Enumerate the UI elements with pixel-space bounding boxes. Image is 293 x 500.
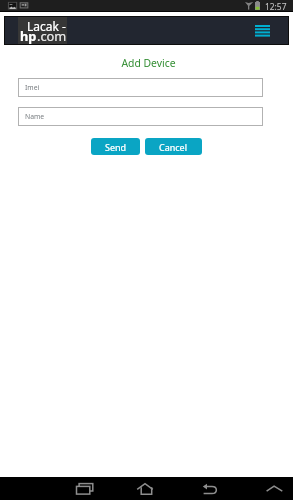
button[interactable]: Imei xyxy=(18,78,263,97)
staticText: hp xyxy=(20,27,37,44)
button[interactable]: Lacak - xyxy=(18,17,67,44)
staticText: .com xyxy=(37,27,67,44)
staticText: Cancel xyxy=(159,141,188,153)
button[interactable]: Name xyxy=(18,107,263,126)
staticText: Add Device xyxy=(2,56,293,70)
button[interactable]: Open navigation menu xyxy=(252,20,273,41)
staticText: Send xyxy=(105,141,127,153)
staticText: Imei xyxy=(25,83,40,92)
button[interactable]: Cancel xyxy=(145,138,202,155)
button[interactable]: Back xyxy=(200,479,220,499)
button[interactable]: Send xyxy=(91,138,140,155)
button[interactable]: Home xyxy=(135,479,157,499)
button[interactable]: Recent apps xyxy=(74,479,94,499)
staticText: Lacak - xyxy=(27,18,66,34)
staticText: 12:57 xyxy=(265,1,287,12)
staticText: Name xyxy=(25,112,45,121)
button[interactable]: Expand navigation xyxy=(262,479,284,499)
